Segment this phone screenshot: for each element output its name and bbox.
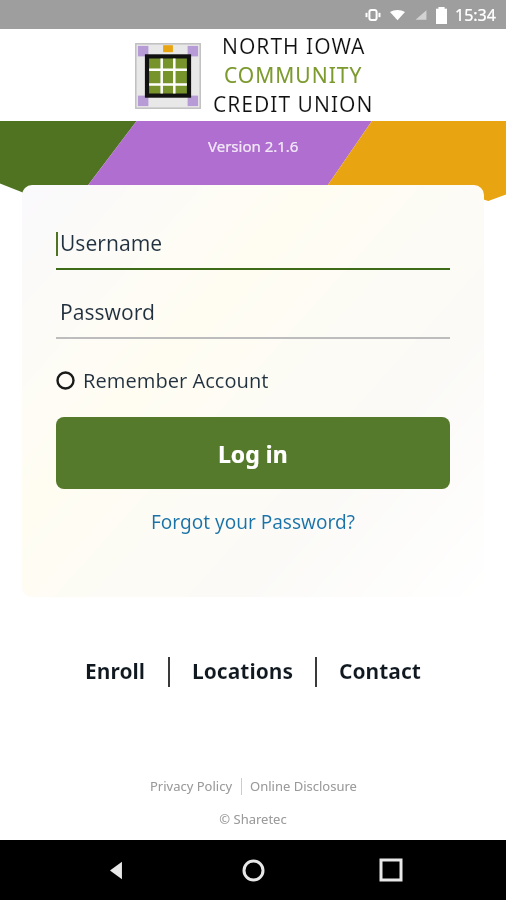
button[interactable]: Locations [170,651,315,692]
staticText: Contact [339,657,421,686]
button[interactable]: Home [230,847,276,893]
button[interactable]: Remember Account [56,367,269,394]
staticText: Password [60,298,155,327]
button[interactable]: Contact [317,651,443,692]
button[interactable]: Password [56,298,450,339]
staticText: NORTH IOWA [222,32,366,61]
button[interactable]: Online Disclosure [242,774,365,798]
staticText: Enroll [85,657,146,686]
button[interactable]: Log in [56,417,450,489]
staticText: COMMUNITY [224,61,363,90]
button[interactable]: Forgot your Password? [56,509,450,535]
staticText: Username [60,229,163,258]
staticText: © Sharetec [219,810,287,828]
staticText: 15:34 [455,4,496,26]
staticText: Online Disclosure [250,777,357,795]
button[interactable]: Privacy Policy [142,774,241,798]
staticText: Locations [192,657,293,686]
staticText: Remember Account [83,367,269,394]
staticText: Log in [218,438,288,469]
button[interactable]: Username [56,229,450,270]
staticText: Forgot your Password? [151,509,355,535]
staticText: Version 2.1.6 [208,136,299,156]
button[interactable]: Enroll [63,651,168,692]
staticText: CREDIT UNION [213,90,374,119]
button[interactable]: Recent apps [368,847,414,893]
staticText: Privacy Policy [150,777,233,795]
button[interactable]: Back [92,847,138,893]
